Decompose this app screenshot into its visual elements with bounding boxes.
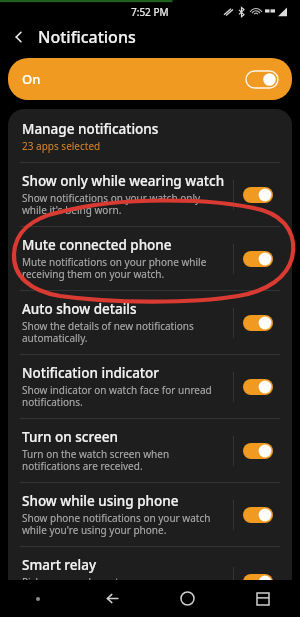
button[interactable]: Show while using phone switch — [234, 501, 282, 529]
staticText: 7:52 PM — [131, 5, 169, 19]
button[interactable]: Keyboard indicator — [0, 580, 75, 617]
button[interactable]: Turn on screen switch — [234, 437, 282, 465]
button[interactable]: Notification indicator — [8, 355, 292, 418]
staticText: Mute notifications on your phone while r… — [22, 255, 225, 281]
button[interactable]: Smart relay switch — [234, 568, 282, 596]
staticText: Notifications — [38, 26, 136, 48]
staticText: Show while using phone — [22, 492, 179, 510]
button[interactable]: Show only while wearing watch switch — [234, 181, 282, 209]
staticText: Mute connected phone — [22, 236, 172, 254]
staticText: Auto show details — [22, 300, 137, 318]
staticText: Smart relay — [22, 556, 97, 574]
staticText: 23 apps selected — [22, 139, 101, 153]
staticText: Show phone notifications on your watch w… — [22, 511, 225, 537]
button[interactable]: Back — [0, 20, 38, 54]
staticText: On — [22, 70, 41, 88]
button[interactable]: Home — [150, 580, 225, 617]
staticText: Show notifications on your watch only wh… — [22, 191, 225, 217]
button[interactable]: Auto show details — [8, 291, 292, 354]
button[interactable]: Manage notifications — [8, 109, 292, 162]
staticText: Show the details of new notifications au… — [22, 319, 225, 345]
button[interactable]: Turn on screen — [8, 419, 292, 482]
button[interactable]: Mute connected phone — [8, 227, 292, 290]
staticText: Pick up your phone to open apps automati… — [22, 575, 225, 608]
button[interactable]: Back — [75, 580, 150, 617]
staticText: Show only while wearing watch — [22, 172, 225, 190]
button[interactable]: On — [8, 58, 292, 100]
staticText: Notification indicator — [22, 364, 159, 382]
button[interactable]: Show only while wearing watch — [8, 163, 292, 226]
staticText: Manage notifications — [22, 120, 159, 138]
staticText: Show indicator on watch face for unread … — [22, 383, 225, 409]
staticText: Turn on screen — [22, 428, 118, 446]
button[interactable]: Notification indicator switch — [234, 373, 282, 401]
staticText: Turn on the watch screen when notificati… — [22, 447, 225, 473]
button[interactable]: Recent apps — [225, 580, 300, 617]
button[interactable]: Auto show details switch — [234, 309, 282, 337]
button[interactable]: Smart relay — [8, 547, 292, 617]
button[interactable]: Show while using phone — [8, 483, 292, 546]
button[interactable]: Mute connected phone switch — [234, 245, 282, 273]
